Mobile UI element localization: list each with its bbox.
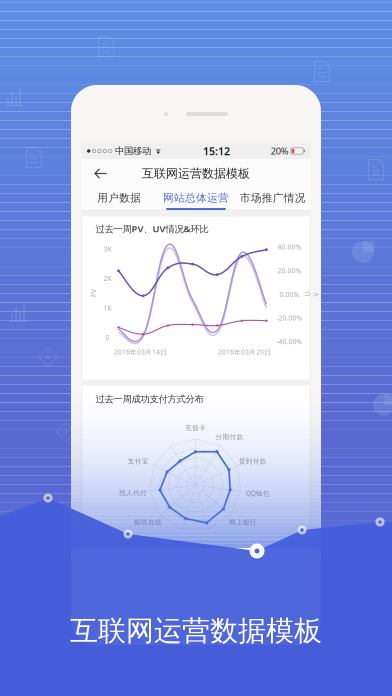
button[interactable]: 用户数据 — [81, 188, 158, 210]
staticText: -20.00% — [276, 314, 302, 322]
staticText: QQ钱包 — [246, 489, 270, 497]
staticText: -40.00% — [276, 337, 302, 346]
staticText: 互联网运营数据模板 — [142, 166, 250, 181]
staticText: 充值卡 — [185, 424, 206, 432]
staticText: 银联在线 — [134, 518, 162, 526]
staticText: 互联网运营数据模板 — [70, 614, 322, 648]
staticText: 中国移动 — [115, 145, 151, 157]
staticText: 网上银行 — [229, 518, 257, 526]
staticText: 市场推广情况 — [240, 191, 306, 204]
staticText: 支付宝 — [128, 457, 149, 465]
staticText: 40.00% — [277, 242, 301, 251]
staticText: 15:12 — [203, 144, 230, 158]
staticText: UV — [308, 284, 315, 302]
staticText: 1K — [103, 303, 111, 312]
staticText: PV — [89, 288, 97, 297]
staticText: 网站总体运营 — [163, 191, 229, 204]
staticText: 分期付款 — [216, 433, 244, 441]
staticText: 货到付款 — [239, 457, 267, 465]
staticText: 2016年03月20日 — [218, 347, 271, 356]
staticText: 过去一周PV、UV情况&环比 — [95, 222, 208, 235]
staticText: 找人代付 — [119, 489, 147, 497]
staticText: 用户数据 — [97, 191, 141, 204]
staticText: 20.00% — [277, 266, 301, 275]
staticText: 0.00% — [279, 290, 299, 299]
staticText: 2016年03月14日 — [114, 347, 167, 356]
staticText: 2K — [103, 274, 111, 283]
staticText: 0 — [105, 333, 109, 342]
staticText: 3K — [103, 244, 111, 253]
staticText: 20% — [271, 145, 289, 157]
button[interactable]: 市场推广情况 — [234, 188, 311, 210]
button[interactable]: Back — [81, 160, 119, 187]
staticText: 过去一周成功支付方式分布 — [95, 393, 203, 405]
button[interactable]: 网站总体运营 — [158, 188, 234, 210]
